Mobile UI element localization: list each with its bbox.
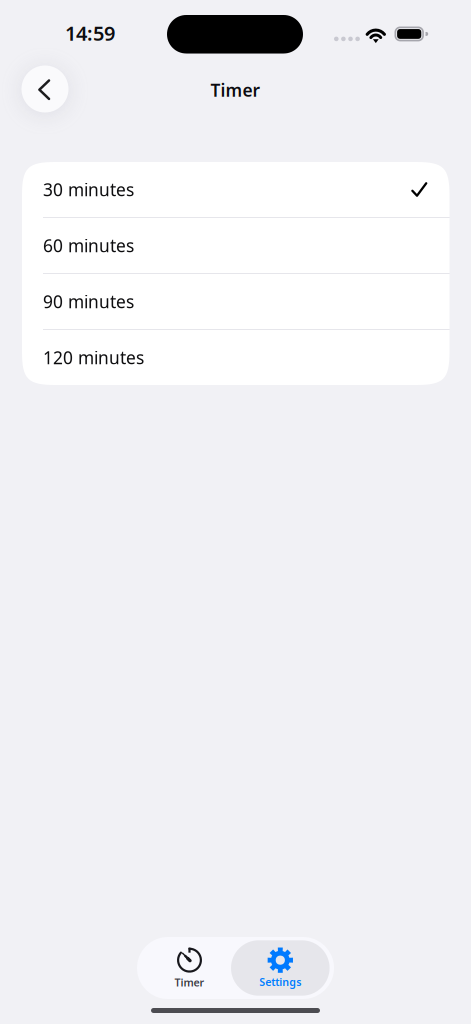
staticText: 90 minutes [43, 290, 134, 313]
staticText: 60 minutes [43, 234, 134, 257]
staticText: Settings [259, 975, 301, 989]
button[interactable]: 30 minutes [22, 162, 449, 217]
staticText: 120 minutes [43, 346, 144, 369]
button[interactable]: Settings [231, 937, 330, 999]
staticText: 14:59 [65, 20, 115, 46]
button[interactable]: 60 minutes [22, 218, 449, 273]
staticText: Timer [210, 78, 260, 101]
button[interactable]: 120 minutes [22, 330, 449, 385]
button[interactable]: Timer [140, 937, 239, 999]
staticText: 30 minutes [43, 178, 134, 201]
button[interactable]: 90 minutes [22, 274, 449, 329]
staticText: Timer [174, 975, 204, 989]
button[interactable]: Back [21, 65, 68, 112]
